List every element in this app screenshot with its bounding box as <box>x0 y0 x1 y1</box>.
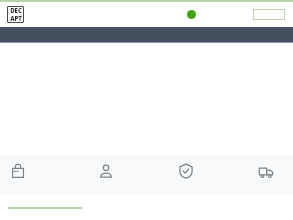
button[interactable]: Account <box>97 162 115 180</box>
button[interactable]: Status indicator <box>187 10 196 19</box>
button[interactable]: Delivery <box>257 162 275 180</box>
staticText: DEC <box>10 7 22 15</box>
button[interactable]: Shop <box>9 162 27 180</box>
button[interactable]: Search <box>253 9 285 20</box>
button[interactable]: DEC APT home <box>7 6 24 23</box>
button[interactable]: Protection <box>177 162 195 180</box>
staticText: APT <box>10 15 22 23</box>
